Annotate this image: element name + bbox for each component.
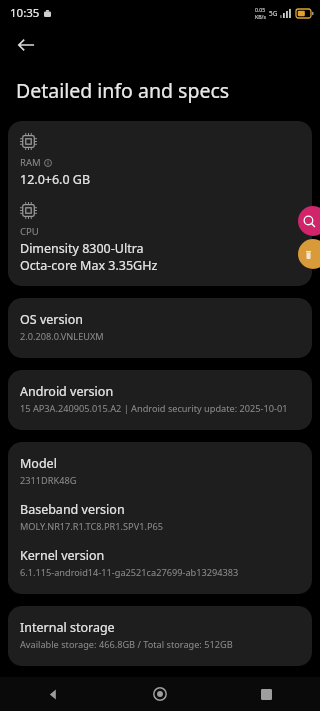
staticText: Octa-core Max 3.35GHz xyxy=(20,257,158,274)
staticText: Internal storage xyxy=(20,619,115,636)
staticText: Available storage: 466.8GB / Total stora… xyxy=(20,638,233,651)
staticText: Model xyxy=(20,455,57,472)
staticText: 0.05 xyxy=(255,6,266,13)
staticText: 15 AP3A.240905.015.A2 | Android security… xyxy=(20,402,288,415)
staticText: Baseband version xyxy=(20,501,125,518)
button[interactable]: Back xyxy=(0,677,106,711)
staticText: CPU xyxy=(20,225,39,238)
staticText: 12.0+6.0 GB xyxy=(20,171,91,188)
staticText: RAM xyxy=(20,156,41,169)
staticText: Android version xyxy=(20,383,114,400)
staticText: Kernel version xyxy=(20,547,105,564)
staticText: MOLY.NR17.R1.TC8.PR1.SPV1.P65 xyxy=(20,520,163,533)
staticText: Detailed info and specs xyxy=(16,77,230,104)
staticText: OS version xyxy=(20,311,83,328)
button[interactable]: Search xyxy=(298,206,320,236)
staticText: 2311DRK48G xyxy=(20,474,77,487)
staticText: 2.0.208.0.VNLEUXM xyxy=(20,330,104,343)
staticText: Dimensity 8300-Ultra xyxy=(20,240,144,257)
staticText: 6.1.115-android14-11-ga2521ca27699-ab132… xyxy=(20,566,239,579)
staticText: 5G xyxy=(269,9,278,18)
button[interactable]: Clean up xyxy=(298,239,320,269)
button[interactable]: Recent apps xyxy=(213,677,320,711)
staticText: 10:35 xyxy=(10,5,40,21)
button[interactable]: Home xyxy=(106,677,213,711)
staticText: KB/s xyxy=(255,13,266,20)
button[interactable]: Back xyxy=(8,27,44,63)
